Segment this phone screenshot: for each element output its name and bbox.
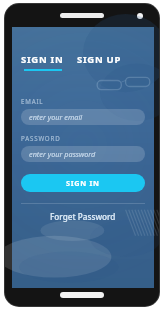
button[interactable]: enter your password [21, 146, 145, 162]
staticText: enter your password [29, 149, 96, 159]
staticText: SIGN UP [77, 53, 121, 66]
button[interactable]: Forget Password [21, 211, 145, 222]
button[interactable]: SIGN IN [21, 53, 64, 71]
staticText: PASSWORD [21, 134, 61, 142]
staticText: EMAIL [21, 97, 44, 105]
staticText: Forget Password [50, 211, 116, 222]
staticText: SIGN IN [66, 178, 100, 188]
button[interactable]: SIGN UP [77, 53, 121, 66]
staticText: enter your email [29, 112, 83, 122]
button[interactable]: SIGN IN [21, 174, 145, 192]
staticText: SIGN IN [21, 53, 64, 66]
button[interactable]: enter your email [21, 109, 145, 125]
